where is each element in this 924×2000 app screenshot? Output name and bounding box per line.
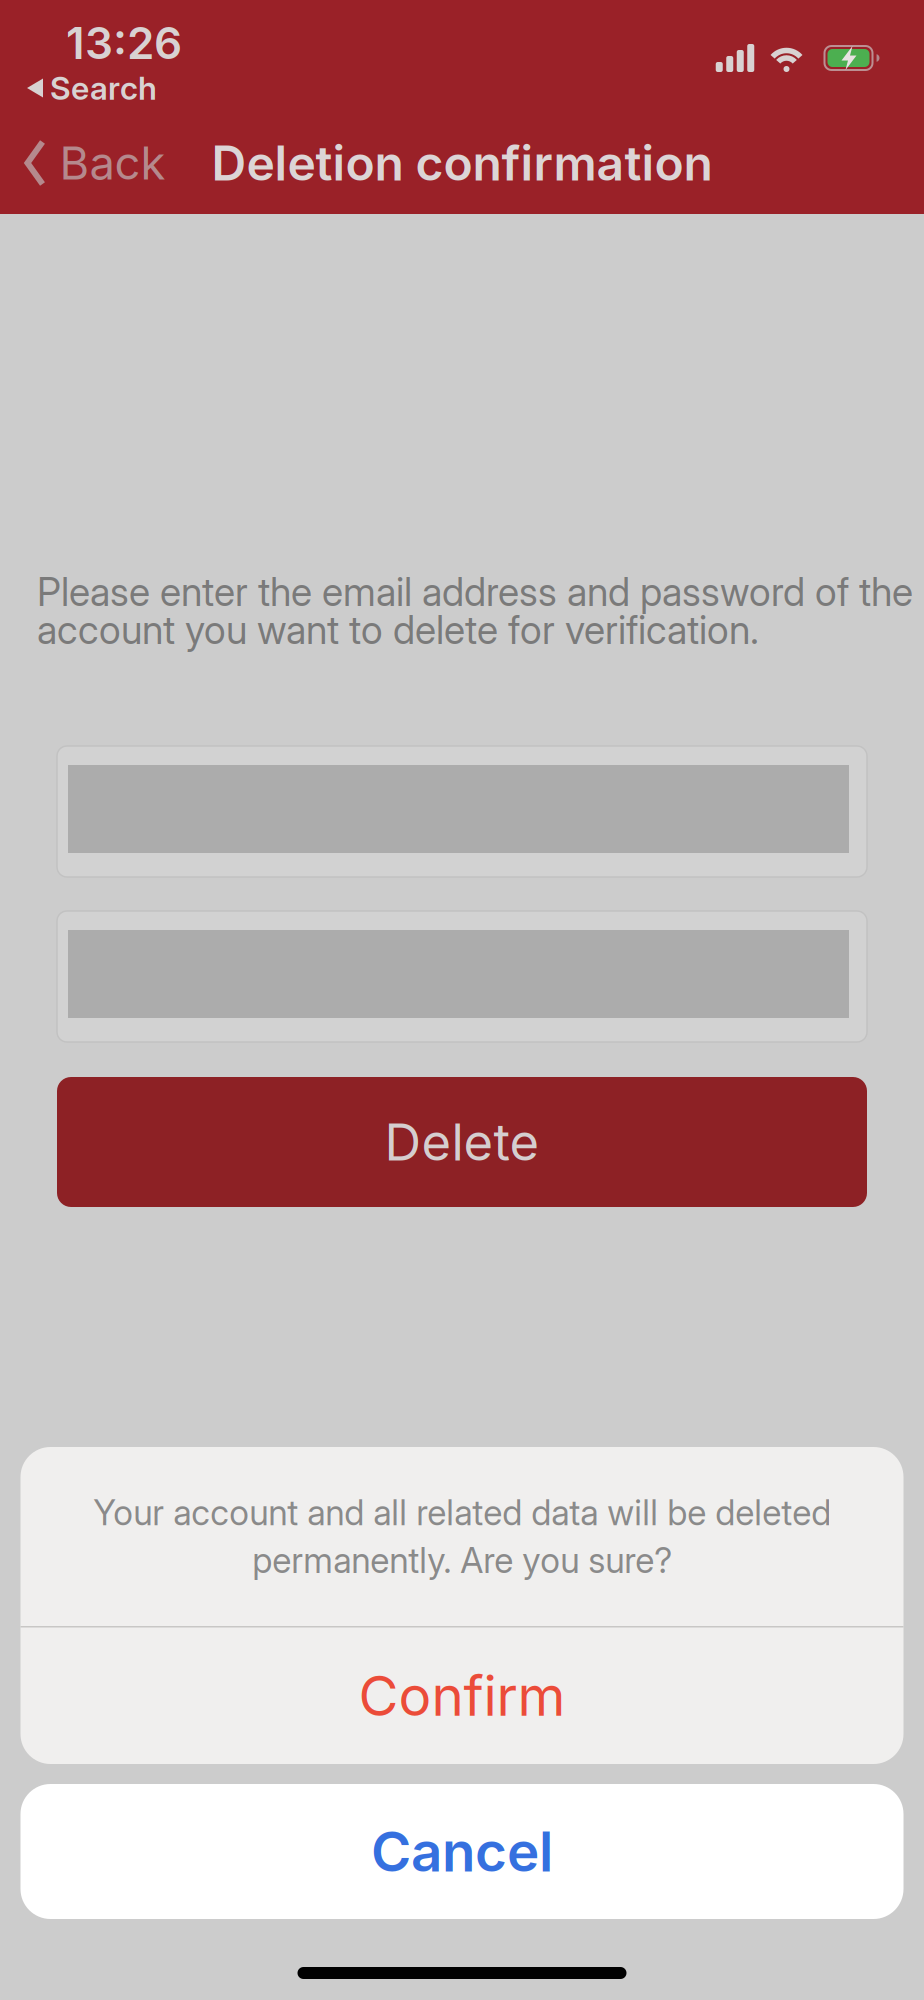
button[interactable]: Confirm (20, 1627, 903, 1764)
staticText: Your account and all related data will b… (93, 1492, 831, 1581)
staticText: Please enter the email address and passw… (37, 569, 913, 615)
button[interactable]: Delete (57, 1077, 867, 1207)
button[interactable]: Password (57, 911, 867, 1042)
staticText: 13:26 (66, 17, 182, 69)
staticText: Confirm (358, 1663, 565, 1728)
button[interactable]: Cancel (20, 1784, 903, 1919)
staticText: Search (50, 69, 157, 107)
staticText: Cancel (371, 1819, 553, 1884)
button[interactable]: Back (24, 136, 165, 190)
button[interactable]: Email address (57, 746, 867, 877)
staticText: Deletion confirmation (211, 135, 712, 191)
staticText: Back (59, 136, 165, 190)
staticText: Delete (384, 1112, 539, 1172)
staticText: account you want to delete for verificat… (37, 607, 759, 653)
